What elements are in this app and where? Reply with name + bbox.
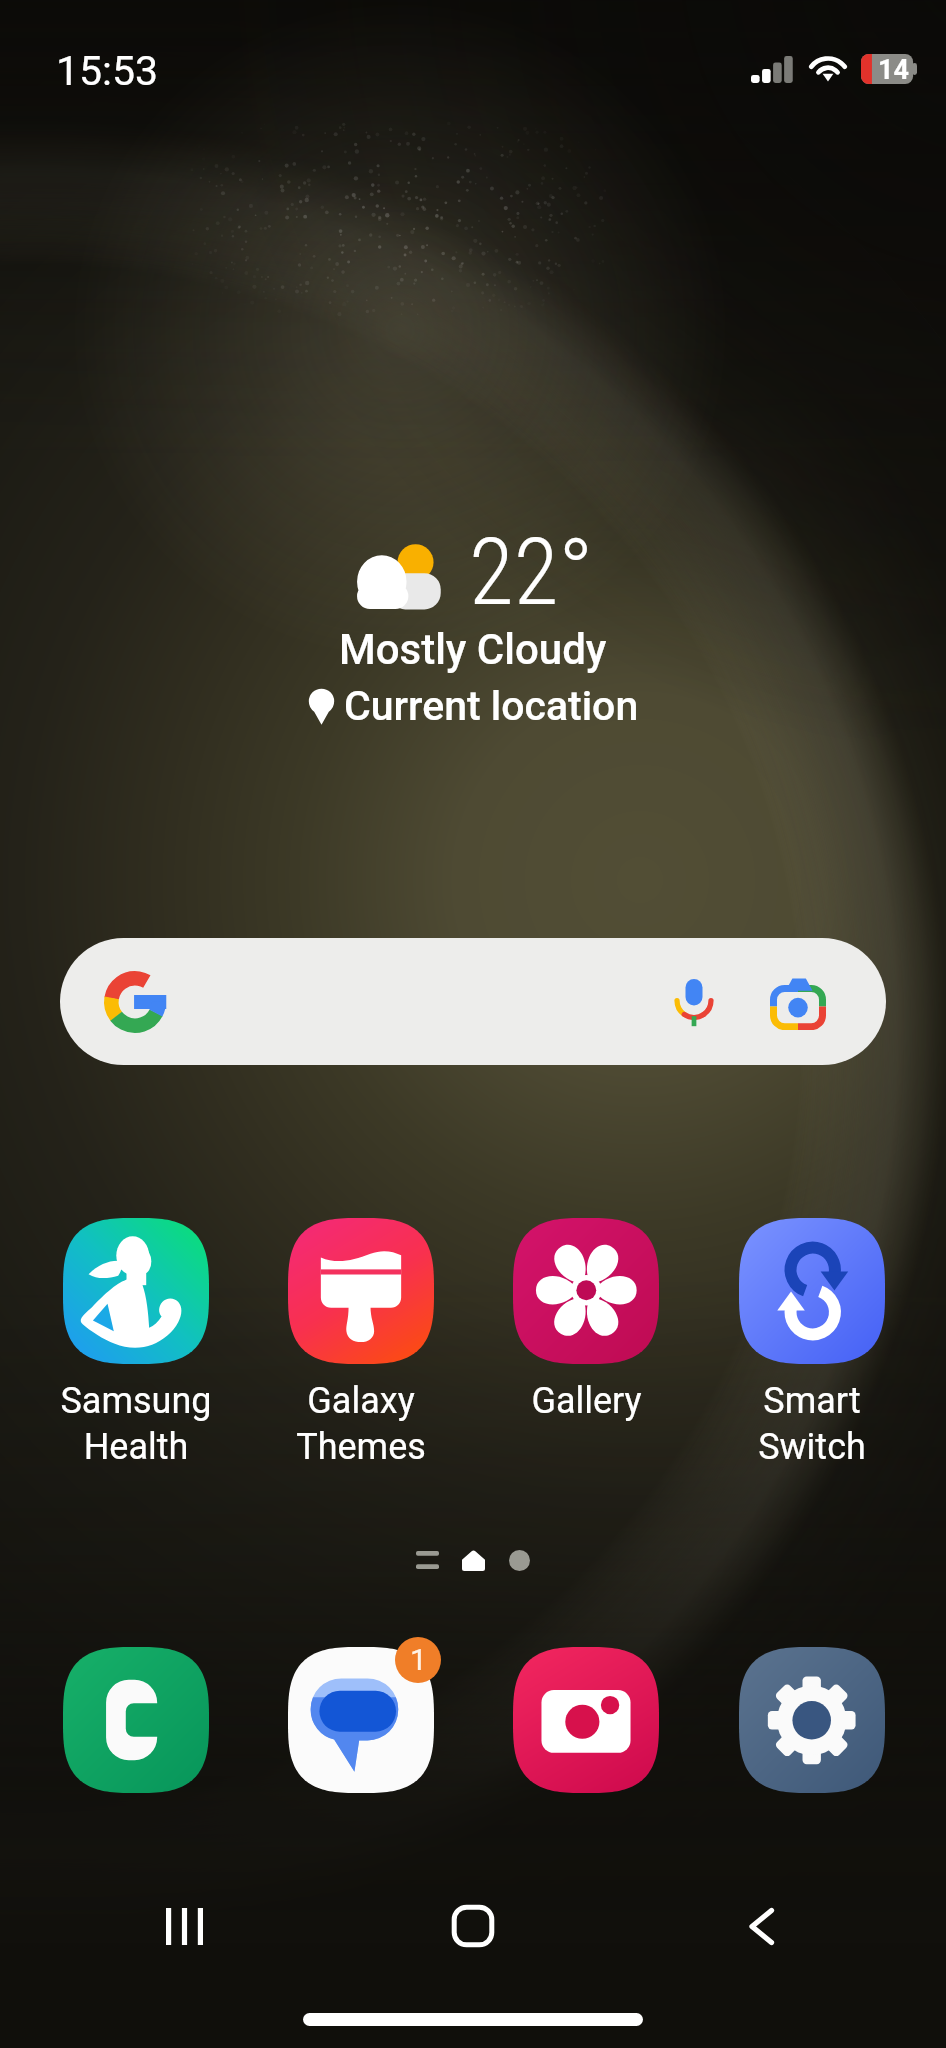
button[interactable]: App list (404, 1537, 450, 1583)
staticText: Mostly Cloudy (339, 625, 607, 674)
button[interactable]: Phone (23, 1647, 248, 1823)
button[interactable]: Settings (699, 1647, 925, 1823)
button[interactable]: Galaxy Themes (248, 1218, 473, 1467)
staticText: 14 (878, 54, 909, 84)
staticText: 1 (410, 1642, 427, 1677)
staticText: Smart Switch (758, 1380, 866, 1467)
staticText: Gallery (531, 1380, 642, 1422)
staticText: 15:53 (56, 47, 159, 95)
staticText: 22° (469, 519, 594, 627)
button[interactable]: Back (697, 1862, 825, 1990)
button[interactable]: Voice search (656, 964, 732, 1040)
button[interactable]: Camera (473, 1647, 699, 1823)
staticText: Galaxy Themes (296, 1380, 426, 1467)
button[interactable]: Home screen (450, 1537, 496, 1583)
button[interactable]: Voice search (60, 938, 886, 1065)
button[interactable]: Recents (120, 1862, 248, 1990)
staticText: Current location (344, 682, 639, 730)
button[interactable]: Messages (248, 1647, 473, 1823)
button[interactable]: Page 3 (496, 1537, 542, 1583)
button[interactable]: Google Lens (760, 964, 836, 1040)
button[interactable]: 22° (0, 525, 946, 730)
button[interactable]: Samsung Health (23, 1218, 248, 1467)
button[interactable]: Home (409, 1862, 537, 1990)
button[interactable]: Smart Switch (699, 1218, 925, 1467)
button[interactable]: Gallery (473, 1218, 699, 1422)
staticText: Samsung Health (60, 1380, 212, 1467)
